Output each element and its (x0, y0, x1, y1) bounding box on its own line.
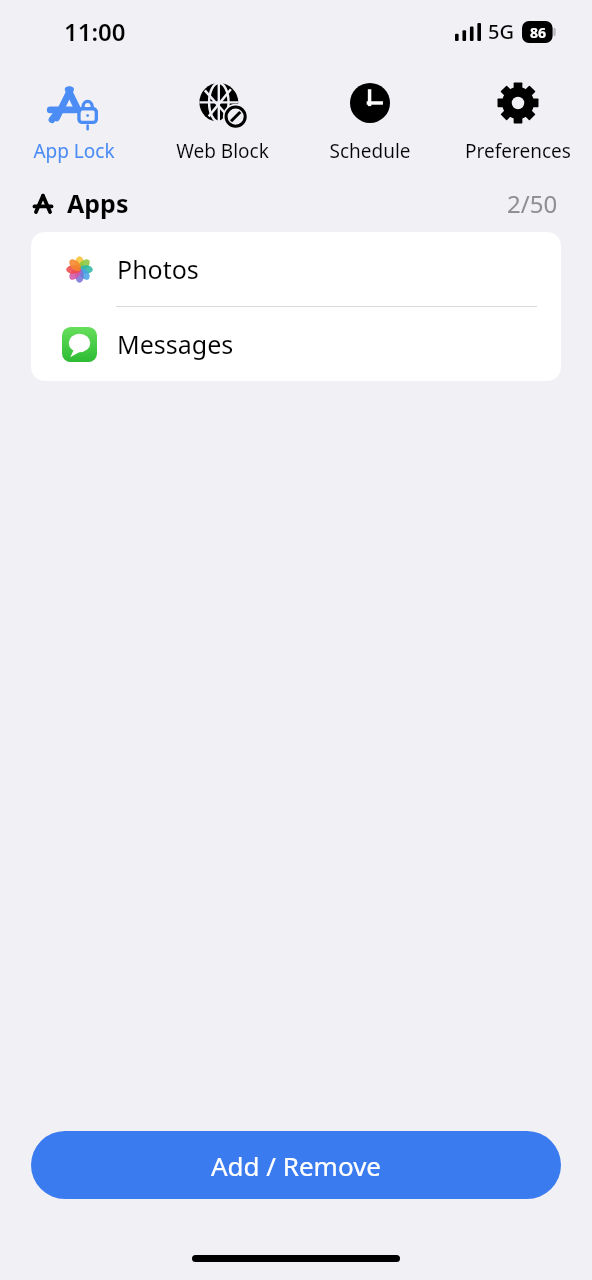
staticText: Schedule (329, 138, 411, 164)
button[interactable]: Web Block (148, 76, 296, 164)
button[interactable]: Preferences (444, 76, 592, 164)
staticText: 5G (488, 18, 514, 45)
button[interactable]: Schedule (296, 76, 444, 164)
staticText: App Lock (33, 138, 115, 164)
staticText: Messages (117, 327, 234, 361)
staticText: Add / Remove (211, 1148, 382, 1183)
button[interactable]: Add / Remove (31, 1131, 561, 1199)
button[interactable]: Messages (31, 307, 561, 381)
staticText: Preferences (465, 138, 571, 164)
staticText: 11:00 (64, 15, 126, 48)
staticText: Apps (67, 186, 129, 220)
button[interactable]: App Lock (0, 76, 148, 164)
button[interactable]: Photos (31, 232, 561, 307)
staticText: Photos (117, 252, 199, 286)
staticText: 2/50 (507, 187, 558, 220)
staticText: Web Block (176, 138, 269, 164)
staticText: 86 (530, 23, 547, 42)
